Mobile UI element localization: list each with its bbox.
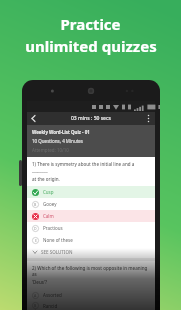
staticText: 03 mins : 50 secs (71, 115, 111, 122)
staticText: D (34, 226, 37, 231)
staticText: Gooey (43, 201, 57, 207)
button[interactable]: More options (142, 112, 155, 125)
button[interactable]: Calm (27, 210, 155, 222)
staticText: Cusp (43, 189, 54, 195)
staticText: B (34, 303, 37, 308)
staticText: 'Deus'? (32, 279, 48, 285)
staticText: Assorted (43, 292, 62, 298)
staticText: Rancid (43, 303, 58, 309)
button[interactable]: SEE SOLUTION (27, 246, 155, 258)
button[interactable]: B (27, 301, 155, 310)
staticText: B (34, 202, 37, 207)
staticText: E (35, 238, 37, 243)
staticText: None of these (43, 237, 73, 243)
button[interactable]: A (27, 289, 155, 301)
button[interactable]: E (27, 234, 155, 246)
staticText: unlimited quizzes (25, 36, 157, 56)
button[interactable]: Back (27, 112, 40, 125)
staticText: SEE SOLUTION (41, 249, 73, 255)
button[interactable]: B (27, 198, 155, 210)
staticText: Practice (60, 14, 121, 34)
staticText: Weekly Word-List Quiz - 01 (32, 129, 90, 135)
button[interactable]: D (27, 222, 155, 234)
staticText: Practious (43, 225, 63, 231)
staticText: 2) Which of the following is most opposi… (32, 265, 150, 277)
staticText: A (34, 293, 37, 298)
staticText: Attempted: 10/10 (32, 147, 69, 153)
staticText: 1) There is symmetry about the initial l… (32, 161, 150, 174)
staticText: 10 Questions, 4 Minutes (32, 138, 83, 144)
button[interactable]: Cusp (27, 186, 155, 198)
staticText: at the origin. (32, 176, 60, 182)
staticText: Calm (43, 213, 54, 219)
